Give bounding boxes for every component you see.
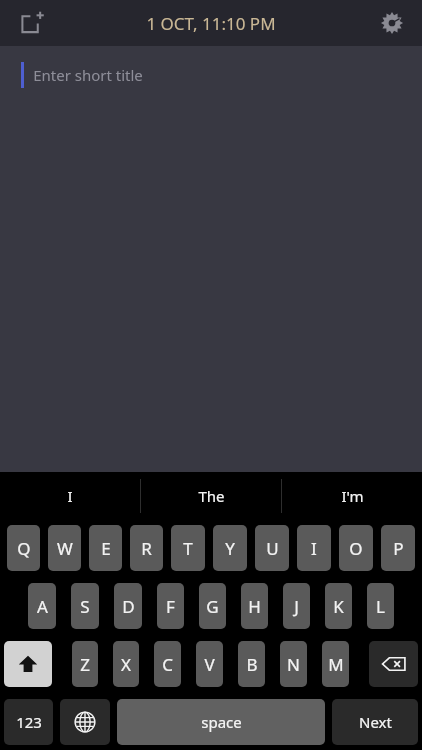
button[interactable]: K [325, 583, 352, 629]
staticText: L [376, 595, 385, 618]
button[interactable]: L [367, 583, 394, 629]
staticText: F [166, 595, 175, 618]
button[interactable]: Z [72, 641, 98, 687]
button[interactable]: R [130, 525, 163, 571]
staticText: 123 [16, 712, 42, 732]
button[interactable]: O [339, 525, 373, 571]
button[interactable]: B [238, 641, 265, 687]
staticText: space [201, 712, 242, 732]
staticText: A [37, 595, 48, 618]
staticText: N [287, 653, 300, 676]
staticText: Q [17, 537, 31, 560]
button[interactable]: P [381, 525, 415, 571]
button[interactable]: X [113, 641, 139, 687]
button[interactable]: M [322, 641, 349, 687]
button[interactable]: C [154, 641, 181, 687]
button[interactable]: Change language [60, 699, 110, 745]
staticText: K [333, 595, 344, 618]
staticText: S [80, 595, 90, 618]
staticText: M [328, 653, 344, 676]
staticText: O [349, 537, 363, 560]
staticText: I'm [341, 486, 364, 506]
button[interactable]: Enter short title [0, 46, 422, 104]
staticText: W [57, 537, 73, 560]
staticText: Z [80, 653, 90, 676]
staticText: D [122, 595, 135, 618]
button[interactable]: Y [213, 525, 247, 571]
staticText: X [121, 653, 131, 676]
button[interactable]: Shift [4, 641, 52, 687]
staticText: P [393, 537, 404, 560]
button[interactable]: I [0, 472, 140, 519]
button[interactable]: Q [7, 525, 40, 571]
button[interactable]: U [255, 525, 289, 571]
button[interactable]: space [117, 699, 325, 745]
staticText: V [204, 653, 215, 676]
staticText: J [294, 595, 299, 618]
button[interactable]: The [141, 472, 281, 519]
button[interactable]: S [71, 583, 99, 629]
button[interactable]: A [28, 583, 56, 629]
staticText: U [266, 537, 279, 560]
button[interactable]: J [283, 583, 310, 629]
staticText: C [162, 653, 173, 676]
staticText: R [141, 537, 152, 560]
button[interactable]: I [297, 525, 331, 571]
staticText: I [311, 537, 317, 560]
button[interactable]: D [114, 583, 142, 629]
button[interactable]: N [280, 641, 307, 687]
button[interactable]: 123 [4, 699, 53, 745]
staticText: Next [359, 712, 392, 732]
staticText: Y [225, 537, 235, 560]
staticText: 1 OCT, 11:10 PM [146, 12, 276, 35]
button[interactable]: New note [10, 1, 54, 45]
staticText: E [101, 537, 111, 560]
button[interactable]: Backspace [369, 641, 418, 687]
button[interactable]: G [199, 583, 226, 629]
staticText: T [183, 537, 193, 560]
button[interactable]: T [171, 525, 205, 571]
staticText: B [246, 653, 258, 676]
button[interactable]: F [157, 583, 184, 629]
button[interactable]: H [241, 583, 268, 629]
staticText: I [67, 486, 73, 506]
button[interactable]: I'm [282, 472, 422, 519]
button[interactable]: W [48, 525, 81, 571]
button[interactable]: Settings [370, 1, 414, 45]
button[interactable]: V [196, 641, 223, 687]
staticText: Enter short title [33, 65, 143, 85]
staticText: The [198, 486, 225, 506]
staticText: H [248, 595, 261, 618]
staticText: G [206, 595, 219, 618]
button[interactable]: E [89, 525, 122, 571]
button[interactable]: Next [332, 699, 418, 745]
